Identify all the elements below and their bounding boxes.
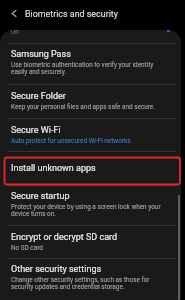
staticText: Secure Folder (11, 91, 66, 102)
staticText: Encrypt or decrypt SD card (11, 232, 118, 243)
button[interactable]: Other security settings (0, 259, 181, 300)
staticText: Change other security settings, such as … (11, 276, 161, 290)
staticText: Protect your device by using a screen lo… (11, 203, 161, 217)
staticText: Secure startup (11, 191, 70, 202)
staticText: Samsung Pass (11, 49, 71, 60)
staticText: Auto protect for unsecured Wi-Fi network… (11, 137, 161, 145)
button[interactable]: Secure Wi-Fi (0, 119, 181, 151)
button[interactable]: Secure Folder (0, 85, 181, 118)
staticText: No SD card (11, 244, 161, 252)
staticText: Install unknown apps (11, 163, 96, 174)
button[interactable]: Samsung Pass (0, 44, 181, 84)
staticText: Other security settings (11, 264, 102, 275)
staticText: Keep your personal files and apps safe a… (11, 103, 161, 111)
button[interactable]: Encrypt or decrypt SD card (0, 226, 181, 258)
button[interactable]: Install unknown apps (0, 152, 181, 185)
button[interactable]: Secure startup (0, 186, 181, 225)
button[interactable]: Navigate up (0, 1, 25, 26)
staticText: Secure Wi-Fi (11, 125, 61, 136)
staticText: Use biometric authentication to verify y… (11, 61, 161, 75)
staticText: Un (11, 30, 19, 36)
staticText: Biometrics and security (25, 9, 118, 19)
